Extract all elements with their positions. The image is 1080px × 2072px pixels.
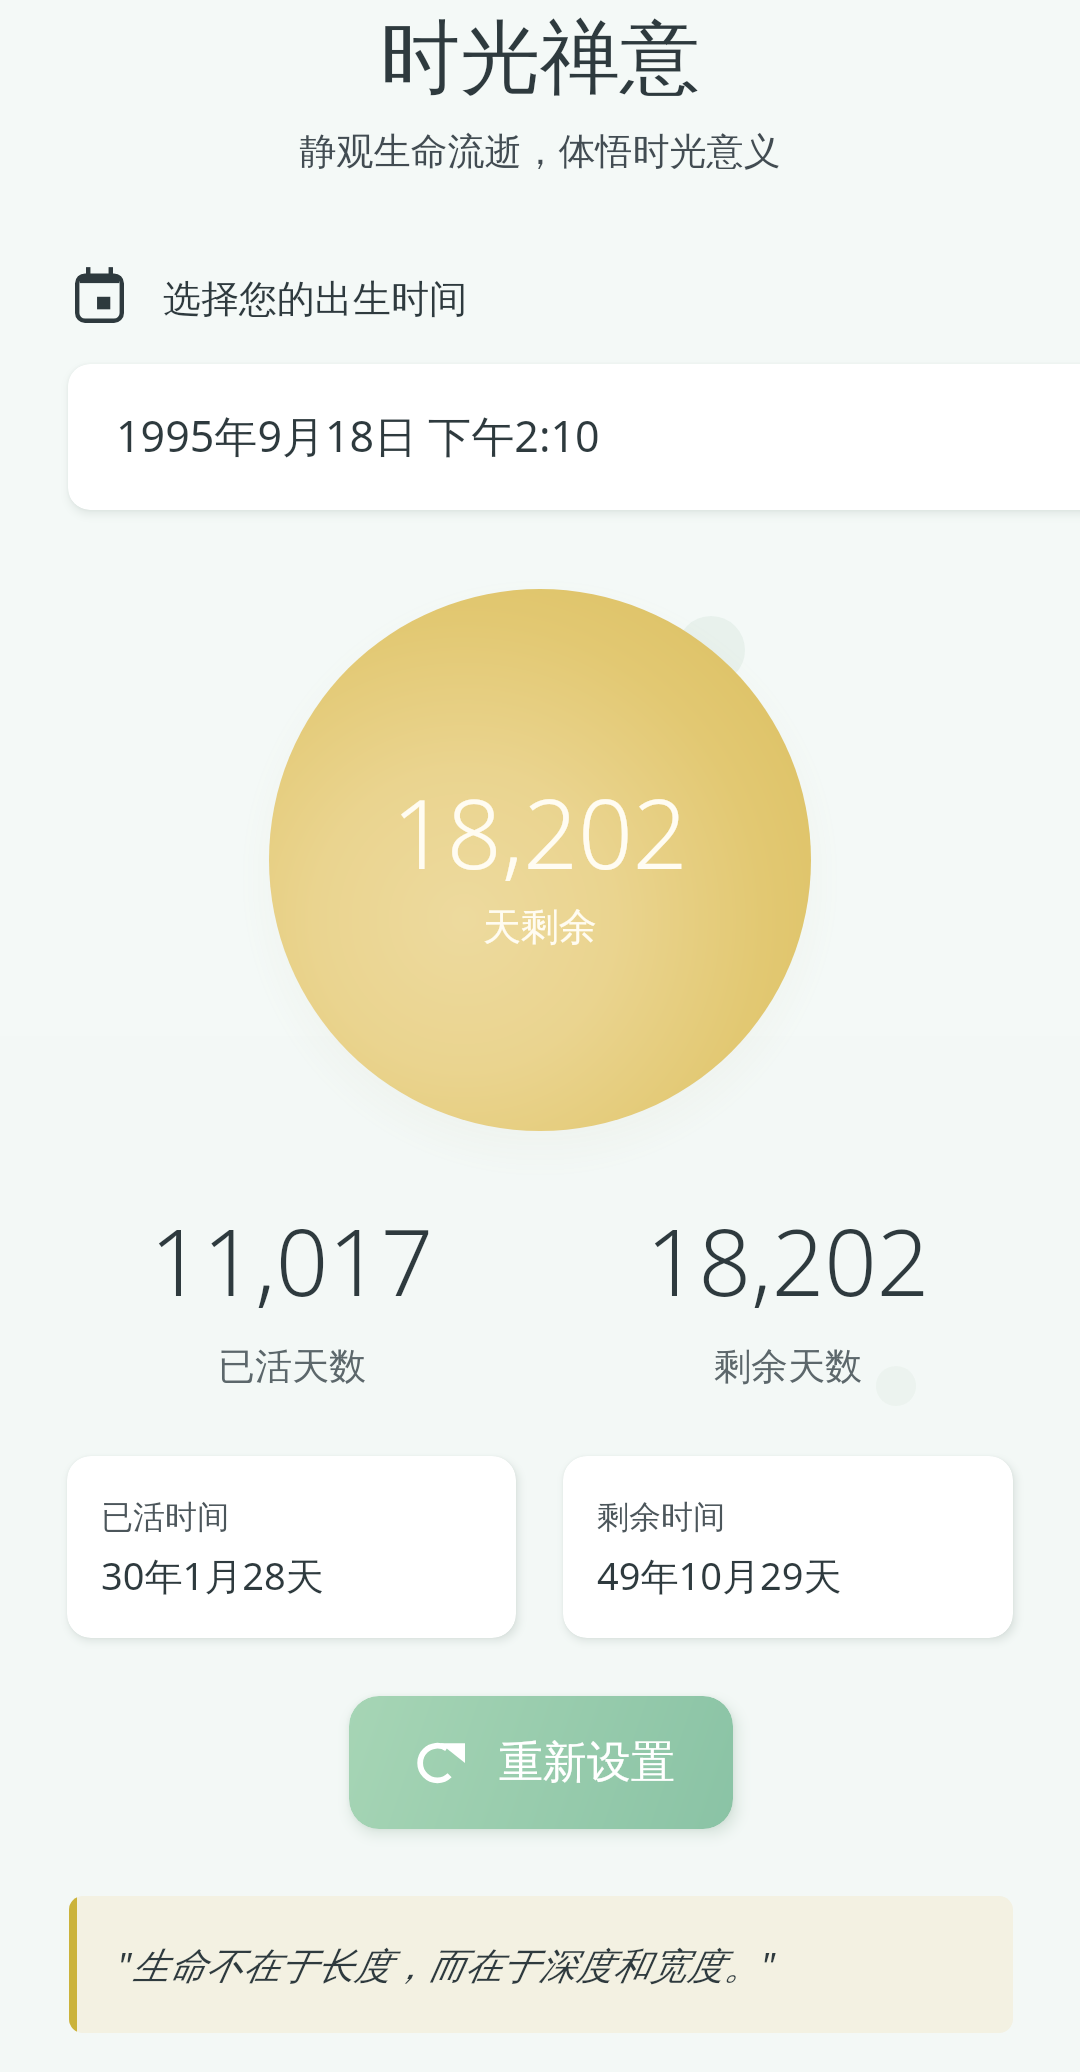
staticText: 30年1月28天 [101,1549,324,1601]
button[interactable]: 剩余时间 [563,1456,1013,1638]
staticText: 选择您的出生时间 [163,275,467,323]
other: Calendar [75,266,124,323]
staticText: 剩余时间 [597,1497,725,1537]
button[interactable]: 重新设置 [349,1696,733,1829]
staticText: 已活时间 [101,1497,229,1537]
button[interactable]: 已活时间 [67,1456,516,1638]
staticText: "生命不在于长度，而在于深度和宽度。" [117,1939,776,1990]
button[interactable]: Calendar [75,259,467,329]
staticText: 1995年9月18日 下午2:10 [116,406,600,465]
staticText: 静观生命流逝，体悟时光意义 [0,128,1080,175]
staticText: 18,202 [646,1198,930,1323]
staticText: 重新设置 [499,1735,675,1790]
staticText: 18,202 [392,766,688,897]
staticText: 49年10月29天 [597,1549,842,1601]
staticText: 剩余天数 [714,1343,862,1390]
staticText: 时光禅意 [0,8,1080,109]
staticText: 已活天数 [218,1343,366,1390]
staticText: 天剩余 [483,903,597,951]
button[interactable]: 1995年9月18日 下午2:10 [68,364,1080,510]
staticText: 11,017 [150,1198,434,1323]
